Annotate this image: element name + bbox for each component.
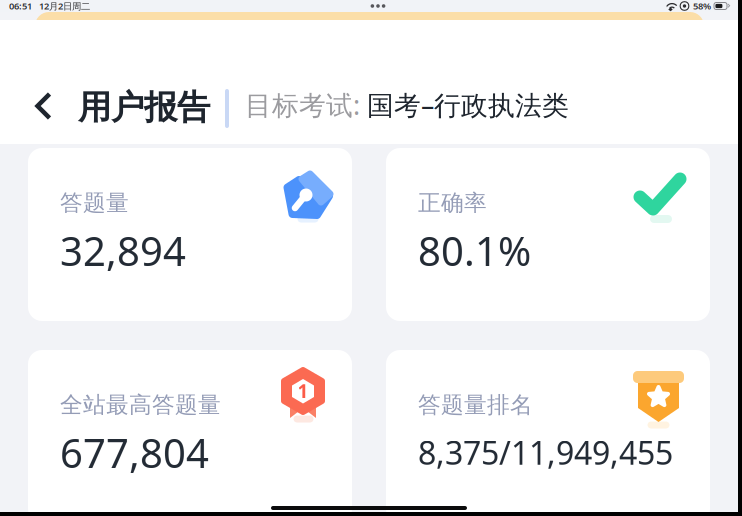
staticText: 06:51 xyxy=(9,0,32,12)
staticText: 80.1% xyxy=(418,224,531,277)
button[interactable]: 返回 xyxy=(20,78,66,134)
staticText: 32,894 xyxy=(60,224,186,277)
staticText: 正确率 xyxy=(418,189,487,217)
staticText: 8,375/11,949,455 xyxy=(418,431,673,473)
staticText: 12月2日周二 xyxy=(39,0,90,12)
staticText: 目标考试: xyxy=(245,87,367,122)
staticText: 677,804 xyxy=(60,426,209,479)
staticText: 1 xyxy=(297,379,308,403)
staticText: 用户报告 xyxy=(78,87,210,128)
staticText: 全站最高答题量 xyxy=(60,391,221,419)
staticText: 国考–行政执法类 xyxy=(367,87,569,122)
staticText: 答题量排名 xyxy=(418,391,533,419)
staticText: 58% xyxy=(693,0,711,12)
staticText: 答题量 xyxy=(60,189,129,217)
